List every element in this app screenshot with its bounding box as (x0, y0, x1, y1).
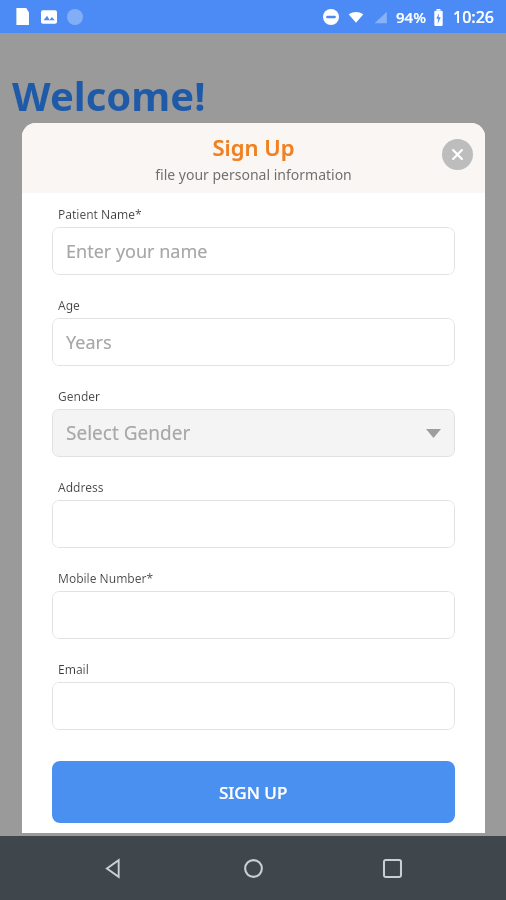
staticText: Patient Name* (58, 206, 142, 222)
staticText: Email (58, 661, 89, 677)
button[interactable] (52, 682, 455, 730)
staticText: SIGN UP (219, 781, 288, 804)
button[interactable]: Recent apps (370, 846, 414, 890)
button[interactable]: Home (231, 846, 275, 890)
button[interactable] (52, 591, 455, 639)
staticText: Gender (58, 388, 101, 404)
staticText: Years (66, 330, 112, 355)
staticText: Enter your name (66, 239, 208, 264)
button[interactable]: Back (92, 846, 136, 890)
staticText: 10:26 (453, 6, 494, 28)
staticText: Select Gender (66, 420, 191, 446)
button[interactable]: SIGN UP (52, 761, 455, 823)
button[interactable]: Select Gender (52, 409, 455, 457)
staticText: Welcome! (12, 68, 206, 122)
button[interactable]: Years (52, 318, 455, 366)
staticText: 94% (396, 7, 426, 27)
staticText: Address (58, 479, 104, 495)
staticText: Mobile Number* (58, 570, 154, 586)
staticText: file your personal information (155, 165, 352, 184)
staticText: Age (58, 297, 80, 313)
staticText: Sign Up (212, 132, 295, 162)
button[interactable]: Close (442, 139, 473, 170)
button[interactable] (52, 500, 455, 548)
button[interactable]: Enter your name (52, 227, 455, 275)
